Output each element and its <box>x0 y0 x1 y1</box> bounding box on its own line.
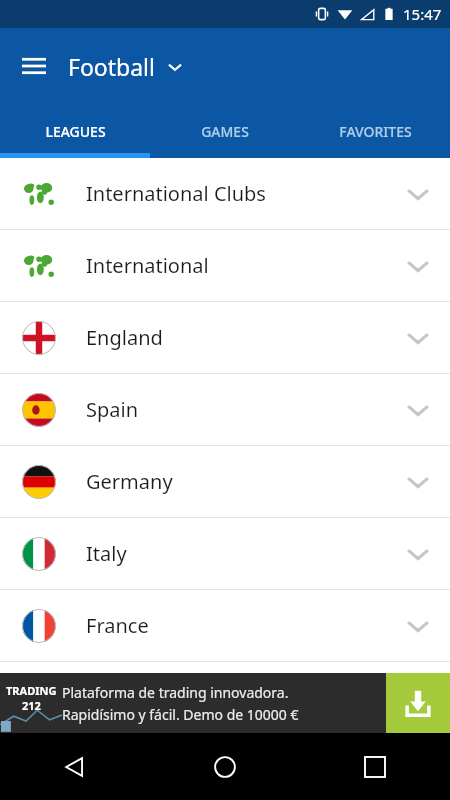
button[interactable]: LEAGUES <box>0 104 150 158</box>
staticText: GAMES <box>201 122 249 141</box>
staticText: Rapidísimo y fácil. Demo de 10000 € <box>62 705 299 724</box>
staticText: 15:47 <box>403 4 442 24</box>
button[interactable]: Germany <box>0 446 450 518</box>
button[interactable]: GAMES <box>150 104 300 158</box>
button[interactable]: Home <box>150 733 300 800</box>
button[interactable]: England <box>0 302 450 374</box>
staticText: International Clubs <box>86 180 405 207</box>
button[interactable]: International Clubs <box>0 158 450 230</box>
staticText: Plataforma de trading innovadora. <box>62 683 289 702</box>
staticText: International <box>86 252 405 279</box>
button[interactable]: Back <box>0 733 150 800</box>
button[interactable]: Install app <box>386 673 450 733</box>
staticText: Football <box>68 51 155 82</box>
staticText: England <box>86 324 405 351</box>
staticText: Spain <box>86 396 405 423</box>
button[interactable]: International <box>0 230 450 302</box>
button[interactable]: Italy <box>0 518 450 590</box>
button[interactable]: Open navigation menu <box>10 42 58 90</box>
staticText: Germany <box>86 468 405 495</box>
button[interactable]: FAVORITES <box>300 104 450 158</box>
button[interactable]: Football <box>68 51 183 82</box>
staticText: LEAGUES <box>45 122 106 141</box>
button[interactable]: France <box>0 590 450 662</box>
staticText: 212 <box>22 698 41 713</box>
staticText: FAVORITES <box>339 122 412 141</box>
staticText: France <box>86 612 405 639</box>
staticText: Italy <box>86 540 405 567</box>
button[interactable]: TRADING <box>0 673 450 733</box>
button[interactable]: Spain <box>0 374 450 446</box>
button[interactable]: Recent apps <box>300 733 450 800</box>
staticText: TRADING <box>6 683 57 698</box>
